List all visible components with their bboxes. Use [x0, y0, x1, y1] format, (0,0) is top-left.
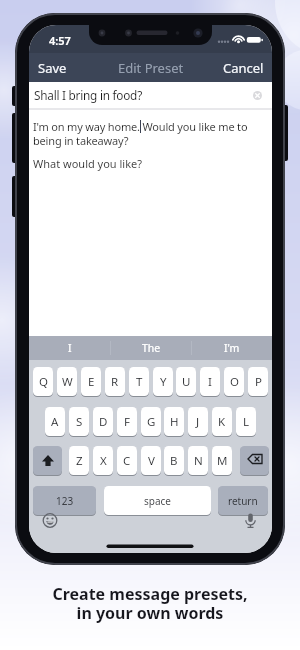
staticText: Q — [39, 374, 48, 390]
staticText: Edit Preset — [118, 59, 184, 77]
staticText: 4:57 — [49, 33, 71, 48]
staticText: X — [100, 453, 107, 469]
button[interactable]: K — [212, 407, 232, 436]
button[interactable]: U — [176, 367, 196, 396]
button[interactable]: J — [188, 407, 208, 436]
button[interactable]: B — [164, 446, 184, 475]
button[interactable]: Y — [153, 367, 173, 396]
button[interactable]: return — [218, 486, 268, 515]
button[interactable]: D — [93, 407, 113, 436]
button[interactable]: Save — [38, 59, 67, 77]
button[interactable]: I — [200, 367, 220, 396]
button[interactable]: Cancel — [223, 59, 264, 77]
staticText: N — [194, 453, 203, 469]
button[interactable]: T — [129, 367, 149, 396]
button[interactable] — [253, 91, 262, 100]
staticText: return — [228, 494, 258, 508]
button[interactable] — [240, 446, 269, 475]
button[interactable]: S — [69, 407, 89, 436]
staticText: R — [111, 374, 119, 390]
staticText: What would you like? — [33, 156, 143, 171]
button[interactable]: L — [236, 407, 256, 436]
button[interactable]: N — [188, 446, 208, 475]
button[interactable]: C — [117, 446, 137, 475]
staticText: O — [230, 374, 239, 390]
button[interactable] — [33, 446, 62, 475]
staticText: I'm on my way home. Would you like me to… — [33, 119, 248, 149]
button[interactable]: E — [81, 367, 101, 396]
staticText: I — [208, 374, 212, 390]
staticText: D — [99, 414, 108, 430]
staticText: I'm — [224, 341, 240, 355]
staticText: A — [51, 414, 59, 430]
staticText: Save — [38, 59, 67, 77]
staticText: F — [124, 414, 130, 430]
button[interactable]: O — [224, 367, 244, 396]
button[interactable]: I — [29, 336, 110, 360]
button[interactable]: A — [45, 407, 65, 436]
button[interactable]: P — [248, 367, 268, 396]
staticText: L — [243, 414, 250, 430]
button[interactable]: R — [105, 367, 125, 396]
staticText: K — [218, 414, 226, 430]
staticText: 123 — [56, 494, 74, 508]
button[interactable]: The — [111, 336, 191, 360]
button[interactable]: Q — [33, 367, 53, 396]
staticText: Y — [160, 374, 167, 390]
staticText: Shall I bring in food? — [34, 87, 142, 103]
staticText: B — [170, 453, 178, 469]
button[interactable]: I'm — [192, 336, 272, 360]
button[interactable]: W — [57, 367, 77, 396]
staticText: Z — [76, 453, 83, 469]
staticText: P — [255, 374, 262, 390]
button[interactable]: X — [93, 446, 113, 475]
button[interactable]: V — [141, 446, 161, 475]
staticText: S — [76, 414, 83, 430]
staticText: H — [170, 414, 179, 430]
staticText: The — [142, 341, 161, 355]
staticText: G — [147, 414, 156, 430]
staticText: E — [88, 374, 95, 390]
button[interactable]: space — [104, 486, 211, 515]
staticText: Create message presets, in your own word… — [0, 583, 300, 624]
button[interactable]: 123 — [33, 486, 96, 515]
staticText: C — [123, 453, 131, 469]
button[interactable]: Z — [69, 446, 89, 475]
staticText: J — [196, 414, 200, 430]
staticText: T — [136, 374, 143, 390]
button[interactable]: F — [117, 407, 137, 436]
staticText: U — [182, 374, 191, 390]
button[interactable]: G — [141, 407, 161, 436]
staticText: M — [217, 453, 228, 469]
button[interactable]: H — [164, 407, 184, 436]
staticText: I — [68, 341, 72, 355]
staticText: space — [144, 494, 171, 508]
staticText: V — [148, 453, 155, 469]
staticText: W — [62, 374, 73, 390]
staticText: Cancel — [223, 59, 264, 77]
button[interactable]: M — [212, 446, 232, 475]
